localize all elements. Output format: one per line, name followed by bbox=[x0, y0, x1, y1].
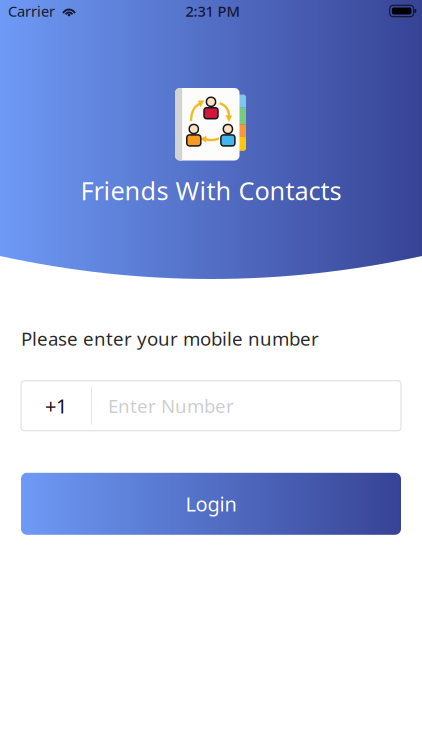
staticText: Please enter your mobile number bbox=[21, 326, 319, 351]
staticText: Friends With Contacts bbox=[80, 173, 341, 207]
staticText: Carrier bbox=[8, 1, 55, 21]
staticText: Enter Number bbox=[108, 393, 234, 418]
staticText: Login bbox=[185, 490, 236, 517]
staticText: +1 bbox=[45, 392, 67, 419]
staticText: 2:31 PM bbox=[185, 1, 239, 21]
button[interactable]: +1 bbox=[21, 381, 401, 431]
button[interactable]: Login bbox=[21, 473, 401, 535]
